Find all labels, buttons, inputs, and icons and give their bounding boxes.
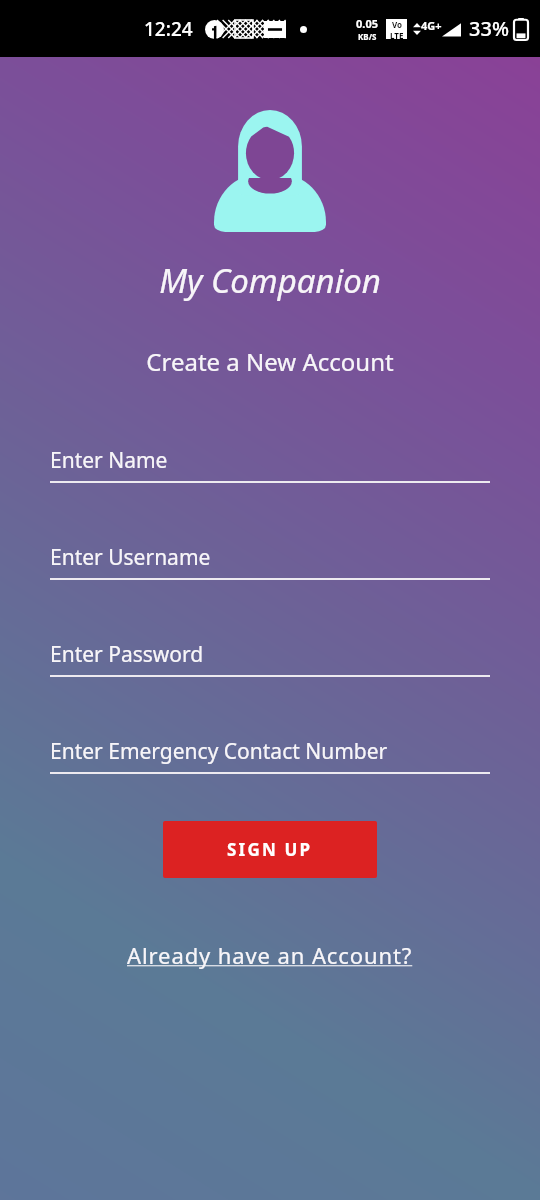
staticText: Enter Emergency Contact Number	[50, 737, 388, 766]
button[interactable]: Already have an Account?	[119, 934, 421, 976]
button[interactable]: Enter Username	[50, 543, 490, 580]
button[interactable]: Enter Name	[50, 446, 490, 483]
staticText: Create a New Account	[146, 345, 394, 378]
button[interactable]: Enter Emergency Contact Number	[50, 737, 490, 774]
staticText: Enter Username	[50, 543, 211, 572]
staticText: Vo	[392, 19, 403, 30]
staticText: SIGN UP	[227, 838, 313, 861]
button[interactable]: SIGN UP	[163, 821, 377, 878]
button[interactable]: Enter Password	[50, 640, 490, 677]
staticText: 0.05	[356, 16, 378, 31]
staticText: Already have an Account?	[127, 940, 413, 970]
staticText: My Companion	[159, 258, 381, 303]
staticText: 12:24	[144, 16, 193, 42]
staticText: KB/S	[358, 31, 377, 42]
staticText: 4G+	[421, 18, 442, 33]
staticText: Enter Password	[50, 640, 204, 669]
staticText: 33%	[469, 15, 509, 42]
staticText: LTE	[390, 30, 404, 39]
staticText: Enter Name	[50, 446, 168, 475]
